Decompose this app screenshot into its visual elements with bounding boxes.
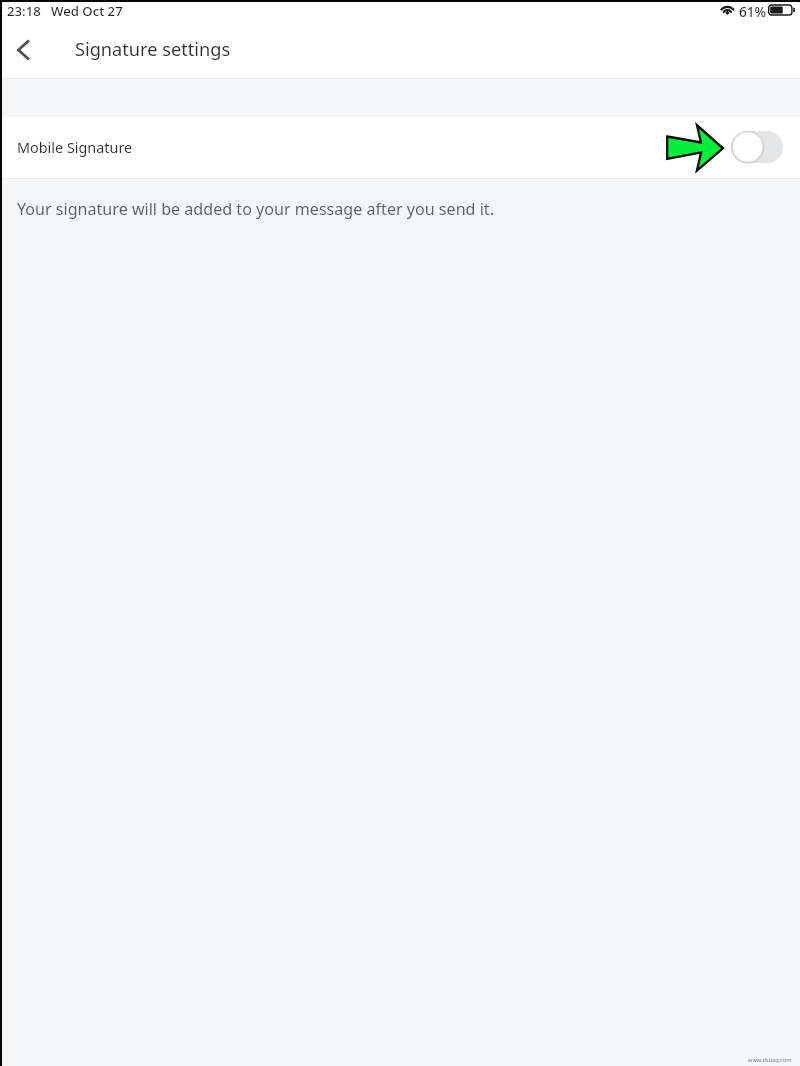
button[interactable]: Mobile Signature toggle xyxy=(731,131,783,163)
staticText: Signature settings xyxy=(75,37,231,62)
button[interactable]: Back xyxy=(3,30,43,70)
staticText: 23:18 xyxy=(7,2,41,20)
staticText: 61% xyxy=(739,2,767,21)
staticText: Wed Oct 27 xyxy=(51,2,123,20)
staticText: Your signature will be added to your mes… xyxy=(17,198,494,220)
staticText: Mobile Signature xyxy=(17,138,133,158)
staticText: www.dsuaq.com xyxy=(748,1056,792,1064)
button[interactable]: Mobile Signature xyxy=(0,117,800,178)
